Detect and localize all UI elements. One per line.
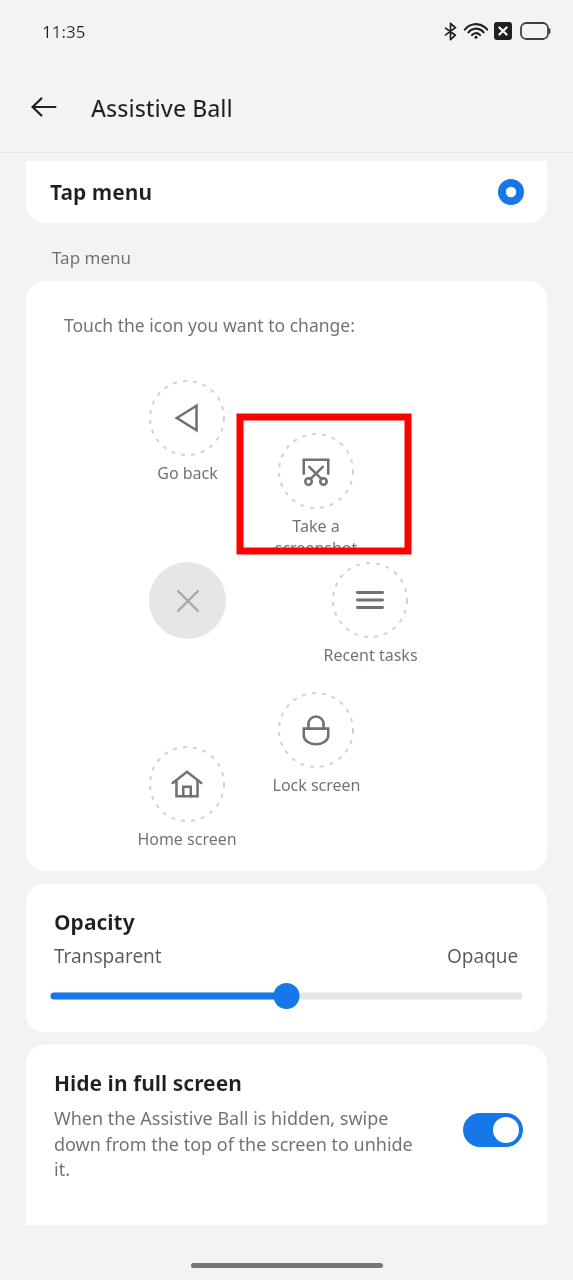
staticText: Tap menu <box>52 246 131 269</box>
staticText: Transparent <box>54 943 162 969</box>
button[interactable]: Tap menu <box>26 161 547 223</box>
staticText: Lock screen <box>272 774 361 796</box>
staticText: When the Assistive Ball is hidden, swipe… <box>54 1106 427 1181</box>
other: Lock screen <box>278 692 354 768</box>
staticText: Recent tasks <box>323 644 418 666</box>
staticText: Opacity <box>54 908 135 937</box>
staticText: 11:35 <box>42 20 86 43</box>
other: Go back <box>149 380 225 456</box>
button[interactable]: Back <box>20 83 68 131</box>
button[interactable]: Hide in full screen <box>26 1045 547 1225</box>
button[interactable]: Close menu <box>149 562 226 639</box>
other: Home screen <box>149 746 225 822</box>
other: Take a screenshot <box>278 433 354 509</box>
staticText: Touch the icon you want to change: <box>64 313 355 337</box>
staticText: Hide in full screen <box>54 1069 242 1098</box>
button[interactable]: Go back <box>125 380 249 484</box>
staticText: Tap menu <box>50 178 153 207</box>
button[interactable]: Recent tasks <box>308 562 432 666</box>
button[interactable]: Lock screen <box>254 692 378 796</box>
button[interactable] <box>54 985 519 1007</box>
staticText: Home screen <box>137 828 237 850</box>
other: Recent tasks <box>332 562 408 638</box>
button[interactable] <box>240 417 408 551</box>
button[interactable]: Take a screenshot <box>254 433 378 559</box>
button[interactable]: Home screen <box>125 746 249 850</box>
staticText: Opaque <box>447 943 519 969</box>
button[interactable]: Hide in full screen toggle <box>463 1113 523 1147</box>
staticText: Go back <box>157 462 218 484</box>
staticText: Take a screenshot <box>254 515 378 559</box>
button[interactable]: Opacity <box>26 884 547 1032</box>
staticText: Assistive Ball <box>91 92 233 123</box>
